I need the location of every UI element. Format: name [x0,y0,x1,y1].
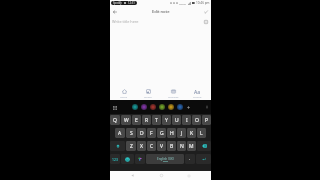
staticText: Edit note [152,9,170,15]
staticText: L [200,130,203,137]
staticText: Image [144,95,152,98]
button[interactable]: O [192,115,201,125]
staticText: B [170,143,174,150]
staticText: M [189,143,194,150]
staticText: X [140,143,143,150]
button[interactable]: C [147,141,156,151]
staticText: Write title here [112,19,139,24]
button[interactable]: Colour 2 [139,102,148,112]
button[interactable]: Home [113,87,135,100]
button[interactable]: Home [155,171,167,180]
staticText: W [124,117,129,124]
button[interactable]: G [157,128,166,138]
button[interactable]: N [177,141,186,151]
staticText: Home [120,95,128,98]
button[interactable]: D [137,128,146,138]
staticText: I [186,117,188,124]
staticText: Checklist [168,95,179,98]
button[interactable]: Keyboard layouts [110,103,119,112]
button[interactable]: S [126,128,136,138]
button[interactable]: Colour 5 [166,102,175,112]
button[interactable]: P [202,115,211,125]
staticText: R [145,117,149,124]
button[interactable]: . [185,154,195,164]
button[interactable]: Back [126,171,138,180]
button[interactable]: Colour 1 [130,102,139,112]
button[interactable]: 123 [110,154,120,164]
button[interactable]: Z [126,141,136,151]
button[interactable]: Save note [202,8,210,16]
button[interactable]: English (UK) [146,154,184,164]
button[interactable]: Emoji [121,154,134,164]
staticText: Q [113,117,117,124]
staticText: 123 [112,157,118,162]
staticText: H [170,130,174,137]
button[interactable]: V [157,141,166,151]
button[interactable]: L [197,128,206,138]
staticText: T [155,117,158,124]
button[interactable]: Checklist [162,87,184,100]
staticText: K [190,130,194,137]
button[interactable]: Brush [203,103,211,111]
button[interactable]: M [187,141,196,151]
staticText: Format [193,95,202,98]
button[interactable]: J [177,128,186,138]
staticText: A [118,130,122,137]
staticText: J [181,130,183,137]
button[interactable]: Enter [196,154,211,164]
staticText: 10:46 pm [196,1,210,5]
button[interactable]: Colour 3 [148,102,157,112]
staticText: . [189,156,191,162]
staticText: Spotify [113,1,122,5]
button[interactable]: Aa [186,87,208,100]
staticText: Y [165,117,168,124]
button[interactable]: Image [137,87,159,100]
staticText: G [160,130,164,137]
button[interactable]: U [172,115,181,125]
staticText: S [130,130,133,137]
staticText: C [150,143,154,150]
button[interactable]: Stickers [135,154,145,164]
button[interactable]: Back [111,8,119,16]
button[interactable]: Shift [110,141,125,151]
button[interactable]: I [182,115,191,125]
button[interactable]: A [115,128,125,138]
button[interactable]: X [137,141,146,151]
button[interactable]: E [132,115,141,125]
staticText: Aa [194,89,201,94]
staticText: V [160,143,164,150]
button[interactable]: Colour 4 [157,102,166,112]
staticText: VoLTE [179,2,187,5]
button[interactable]: T [152,115,161,125]
button[interactable]: F [147,128,156,138]
button[interactable]: B [167,141,176,151]
button[interactable]: Backspace [197,141,211,151]
staticText: F [150,130,153,137]
staticText: U [175,117,179,124]
staticText: O [195,117,199,124]
button[interactable]: Pin note [203,19,209,25]
button[interactable]: K [187,128,196,138]
button[interactable]: Add colour [184,102,193,112]
staticText: D [140,130,144,137]
button[interactable]: W [121,115,131,125]
button[interactable]: H [167,128,176,138]
button[interactable]: Q [110,115,120,125]
staticText: N [180,143,184,150]
staticText: Z [130,143,133,150]
button[interactable]: R [142,115,151,125]
staticText: P [205,117,209,124]
staticText: E [135,117,138,124]
button[interactable]: Recent apps [183,171,195,180]
staticText: 12:31 [128,1,135,5]
button[interactable]: Colour 6 [175,102,184,112]
staticText: English (UK) [157,157,174,161]
button[interactable]: Y [162,115,171,125]
